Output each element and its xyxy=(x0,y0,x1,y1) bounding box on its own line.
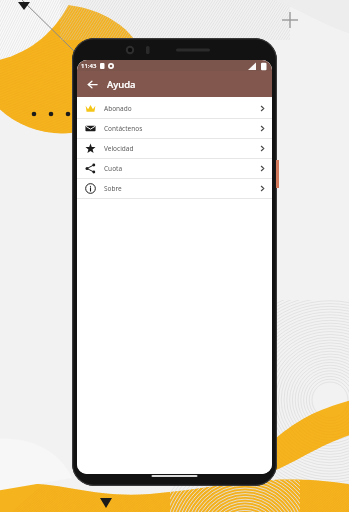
staticText: 11:43 xyxy=(81,62,97,70)
button[interactable]: Cuota xyxy=(77,159,272,178)
button[interactable]: Contáctenos xyxy=(77,119,272,138)
staticText: Contáctenos xyxy=(104,124,143,133)
button[interactable]: Abonado xyxy=(77,99,272,118)
button[interactable]: Velocidad xyxy=(77,139,272,158)
staticText: Ayuda xyxy=(107,78,136,91)
button[interactable]: Sobre xyxy=(77,179,272,198)
staticText: Abonado xyxy=(104,104,132,113)
button[interactable]: Back xyxy=(84,76,100,92)
staticText: Velocidad xyxy=(104,144,134,153)
staticText: Cuota xyxy=(104,164,123,173)
staticText: Sobre xyxy=(104,184,122,193)
